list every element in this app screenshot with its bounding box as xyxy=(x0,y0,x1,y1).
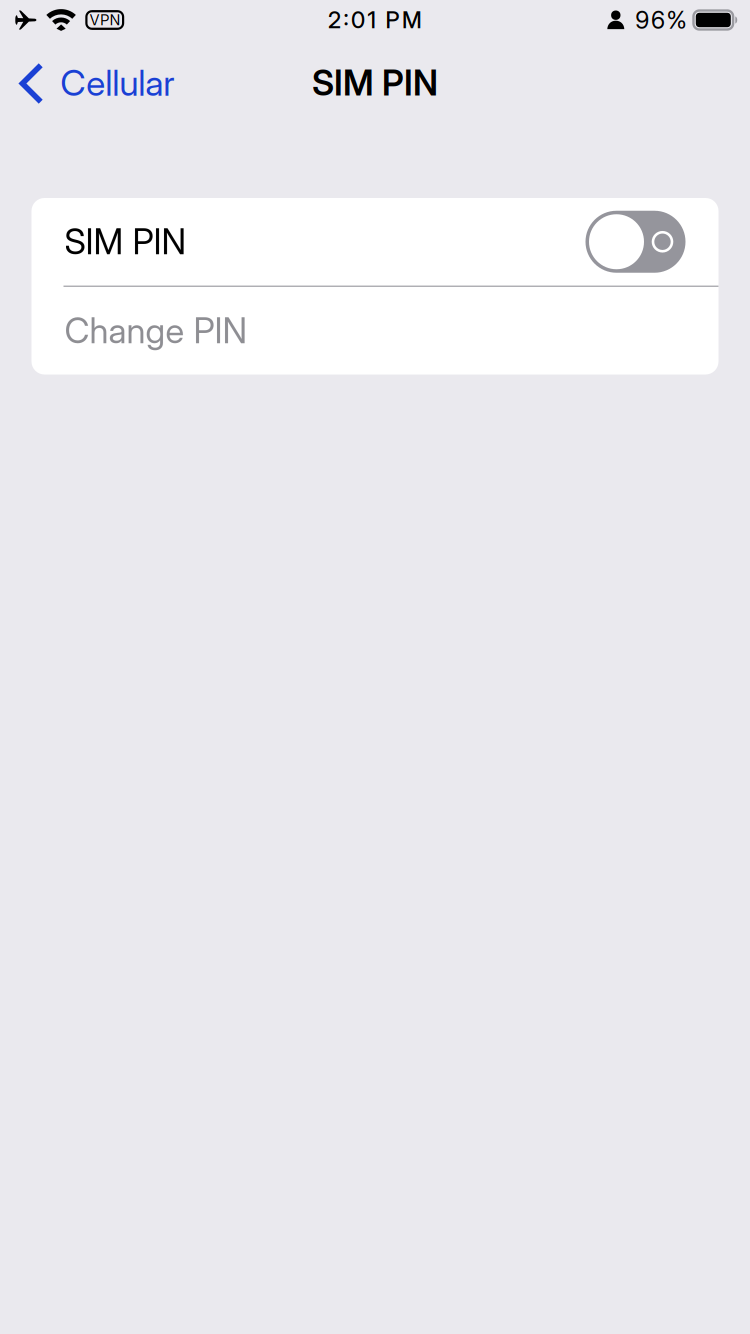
staticText: Cellular xyxy=(60,62,174,104)
staticText: 96% xyxy=(635,5,686,34)
staticText: SIM PIN xyxy=(64,221,186,263)
staticText: 2:01 PM xyxy=(328,6,422,34)
staticText: SIM PIN xyxy=(312,62,438,104)
staticText: Change PIN xyxy=(64,310,247,352)
button[interactable]: Cellular xyxy=(0,40,190,126)
button[interactable]: Change PIN xyxy=(31,287,718,374)
button[interactable]: SIM PIN xyxy=(31,198,718,285)
button[interactable]: SIM PIN, off xyxy=(585,211,685,273)
staticText: VPN xyxy=(90,11,120,29)
